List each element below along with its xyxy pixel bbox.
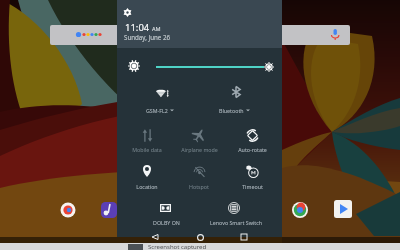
button[interactable] [239, 122, 265, 148]
staticText: Sunday, June 26 [124, 33, 171, 41]
staticText: Lenovo Smart Switch [210, 219, 262, 226]
button[interactable] [186, 122, 212, 148]
button[interactable]: Brightness low [128, 60, 140, 72]
button[interactable] [134, 122, 160, 148]
staticText: Airplane mode [181, 146, 218, 153]
staticText: Location [136, 183, 158, 190]
staticText: Screenshot captured [148, 243, 207, 250]
button[interactable]: Recents [238, 231, 250, 243]
staticText: Hotspot [189, 183, 209, 190]
staticText: DOLBY ON [153, 219, 180, 226]
staticText: Auto-rotate [238, 146, 267, 153]
button[interactable]: GSM-FL2 [130, 105, 190, 115]
button[interactable]: Back [149, 231, 161, 243]
button[interactable]: Settings [120, 5, 134, 19]
button[interactable] [221, 195, 247, 221]
button[interactable] [186, 158, 212, 184]
staticText: Timeout [242, 183, 263, 190]
button[interactable]: Dolby [152, 195, 178, 221]
button[interactable]: Brightness high [264, 62, 274, 72]
staticText: AM [152, 25, 161, 33]
button[interactable] [134, 158, 160, 184]
button[interactable]: Home [194, 231, 206, 243]
staticText: 11:04 [125, 21, 150, 34]
button[interactable] [239, 158, 265, 184]
staticText: GSM-FL2 [146, 107, 168, 114]
button[interactable]: Bluetooth [204, 105, 264, 115]
staticText: Mobile data [132, 146, 162, 153]
staticText: Bluetooth [219, 107, 244, 114]
